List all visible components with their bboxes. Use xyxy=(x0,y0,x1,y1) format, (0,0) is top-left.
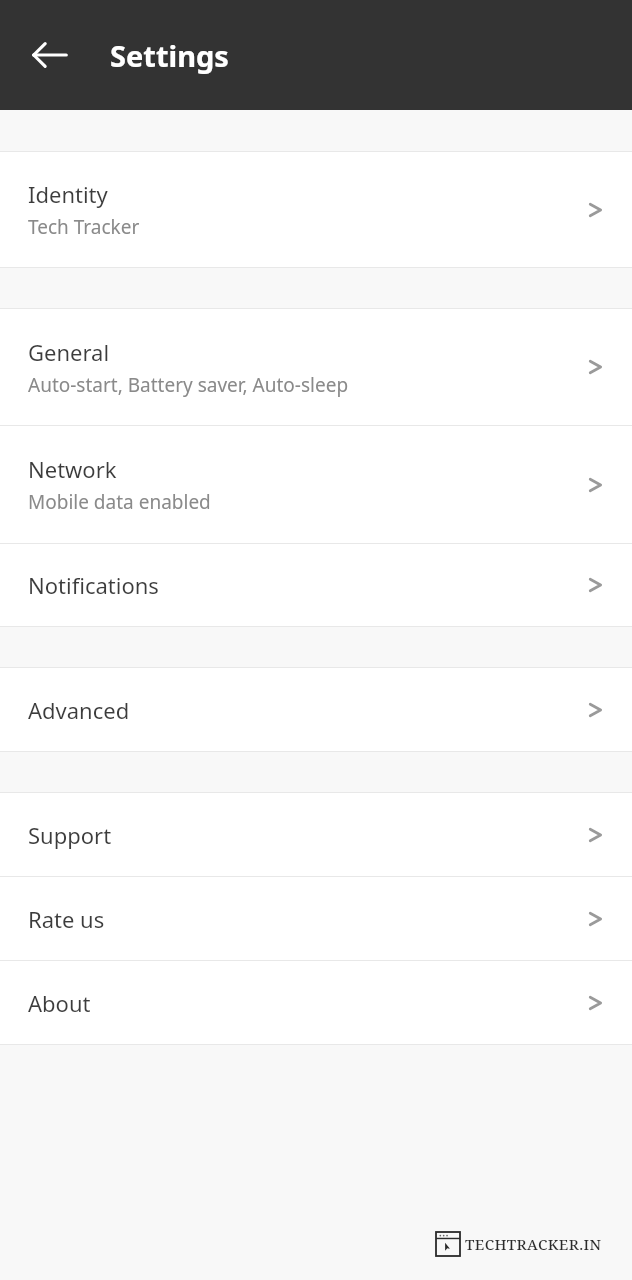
staticText: About xyxy=(28,988,91,1018)
staticText: Notifications xyxy=(28,570,159,600)
button[interactable]: About xyxy=(0,961,632,1044)
staticText: Auto-start, Battery saver, Auto-sleep xyxy=(28,372,349,398)
staticText: Rate us xyxy=(28,904,105,934)
staticText: Tech Tracker xyxy=(28,214,140,240)
staticText: Advanced xyxy=(28,695,130,725)
staticText: Settings xyxy=(110,36,229,75)
other: Back xyxy=(28,33,72,77)
button[interactable]: Identity xyxy=(0,152,632,267)
button[interactable]: Notifications xyxy=(0,544,632,626)
button[interactable]: Support xyxy=(0,793,632,876)
button[interactable]: General xyxy=(0,309,632,425)
staticText: Support xyxy=(28,820,112,850)
staticText: General xyxy=(28,337,110,367)
staticText: Mobile data enabled xyxy=(28,489,211,515)
staticText: Identity xyxy=(28,179,108,209)
staticText: TECHTRACKER.IN xyxy=(465,1234,602,1254)
staticText: Network xyxy=(28,454,117,484)
button[interactable]: Rate us xyxy=(0,877,632,960)
button[interactable]: Network xyxy=(0,426,632,543)
button[interactable]: Back xyxy=(28,33,72,77)
button[interactable]: Advanced xyxy=(0,668,632,751)
